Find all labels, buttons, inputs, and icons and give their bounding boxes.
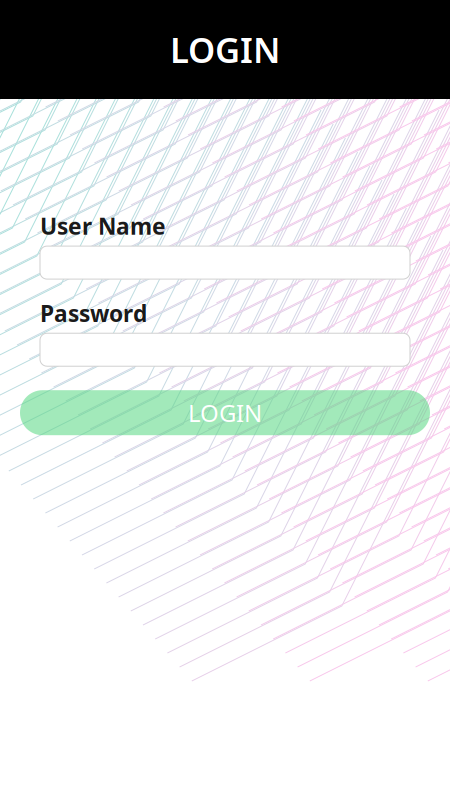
staticText: LOGIN bbox=[170, 26, 280, 72]
staticText: LOGIN bbox=[188, 397, 262, 429]
staticText: Password bbox=[40, 298, 147, 328]
staticText: User Name bbox=[40, 211, 166, 241]
button[interactable]: LOGIN bbox=[20, 390, 430, 435]
